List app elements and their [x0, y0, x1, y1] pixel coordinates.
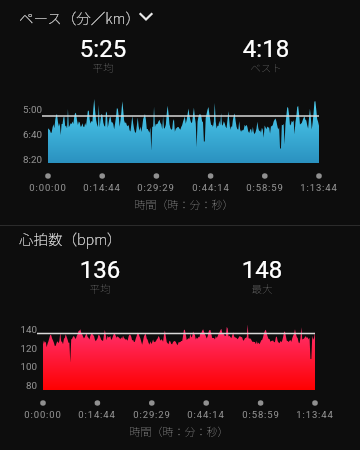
staticText: 0:44:14	[181, 182, 241, 193]
staticText: 0:58:59	[231, 409, 291, 420]
staticText: 140	[0, 324, 37, 335]
staticText: 最大	[202, 281, 322, 296]
staticText: 0:00:00	[18, 182, 78, 193]
button[interactable]: ペース（分／km）	[0, 2, 360, 32]
staticText: 0:00:00	[13, 409, 73, 420]
other: Change metric	[135, 6, 157, 28]
staticText: 148	[202, 256, 322, 284]
staticText: 0:44:14	[176, 409, 236, 420]
staticText: 0:14:44	[72, 182, 132, 193]
staticText: 0:14:44	[67, 409, 127, 420]
staticText: 1:13:44	[289, 182, 349, 193]
staticText: 80	[0, 380, 37, 391]
staticText: 時間（時：分：秒）	[104, 196, 264, 212]
staticText: 1:13:44	[285, 409, 345, 420]
staticText: 平均	[40, 281, 160, 296]
staticText: 5:00	[0, 104, 42, 115]
staticText: 4:18	[206, 35, 326, 63]
staticText: 120	[0, 343, 37, 354]
staticText: 平均	[43, 60, 163, 75]
staticText: 8:20	[0, 154, 42, 165]
staticText: 100	[0, 361, 37, 372]
staticText: 0:29:29	[126, 182, 186, 193]
staticText: 時間（時：分：秒）	[99, 423, 259, 439]
staticText: 心拍数（bpm）	[19, 228, 122, 249]
staticText: 136	[40, 256, 160, 284]
staticText: 6:40	[0, 129, 42, 140]
staticText: 0:29:29	[122, 409, 182, 420]
staticText: 0:58:59	[235, 182, 295, 193]
staticText: 5:25	[43, 35, 163, 63]
staticText: ペース（分／km）	[19, 7, 140, 28]
staticText: ベスト	[206, 60, 326, 75]
button[interactable]: 心拍数（bpm）	[0, 223, 360, 253]
